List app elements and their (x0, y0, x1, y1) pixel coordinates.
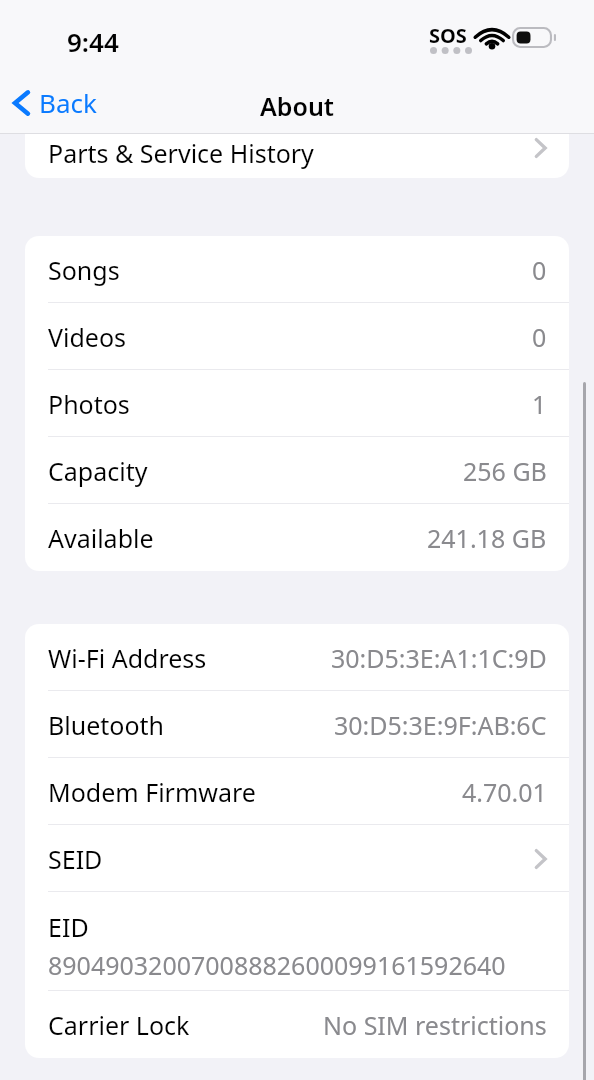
staticText: SOS (429, 22, 467, 49)
button[interactable]: Carrier Lock (25, 991, 569, 1058)
staticText: Capacity (48, 454, 148, 488)
button[interactable]: Modem Firmware (25, 758, 569, 825)
staticText: Photos (48, 387, 130, 421)
staticText: Wi-Fi Address (48, 641, 207, 675)
staticText: SEID (48, 842, 103, 876)
staticText: Carrier Lock (48, 1008, 190, 1042)
staticText: 30:D5:3E:A1:1C:9D (331, 641, 547, 675)
other: Wi-Fi (477, 25, 507, 48)
button[interactable]: Wi-Fi Address (25, 624, 569, 691)
staticText: 241.18 GB (427, 521, 547, 555)
staticText: 30:D5:3E:9F:AB:6C (334, 708, 547, 742)
staticText: 1 (532, 387, 547, 421)
button[interactable]: Parts & Service History (25, 112, 569, 178)
staticText: Songs (48, 253, 120, 287)
staticText: EID (48, 910, 89, 944)
staticText: No SIM restrictions (323, 1008, 547, 1042)
staticText: Modem Firmware (48, 775, 256, 809)
other: Open (534, 848, 547, 870)
staticText: 0 (532, 320, 547, 354)
button[interactable]: Back (5, 81, 109, 124)
staticText: 89049032007008882600099161592640 (48, 948, 506, 982)
staticText: Parts & Service History (48, 136, 314, 170)
button[interactable]: Photos (25, 370, 569, 437)
other: Battery (512, 27, 558, 48)
button[interactable]: Available (25, 504, 569, 571)
button[interactable]: SEID (25, 825, 569, 892)
staticText: About (0, 89, 594, 123)
staticText: 4.70.01 (462, 775, 547, 809)
button[interactable]: Songs (25, 236, 569, 303)
button[interactable]: Capacity (25, 437, 569, 504)
staticText: Bluetooth (48, 708, 165, 742)
staticText: Available (48, 521, 154, 555)
staticText: 0 (532, 253, 547, 287)
other: Open (534, 137, 547, 159)
staticText: 256 GB (463, 454, 547, 488)
button[interactable]: EID (25, 892, 569, 991)
button[interactable]: Videos (25, 303, 569, 370)
staticText: Back (39, 85, 97, 120)
staticText: Videos (48, 320, 127, 354)
staticText: 9:44 (67, 24, 119, 59)
button[interactable]: Bluetooth (25, 691, 569, 758)
